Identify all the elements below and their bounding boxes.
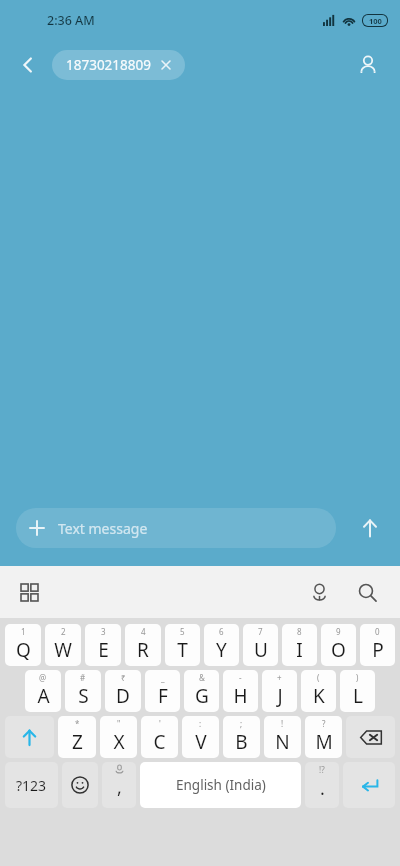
staticText: Q [16,637,31,663]
staticText: F [158,683,168,709]
staticText: @ [39,672,47,683]
button[interactable]: * [58,716,96,758]
staticText: ) [356,672,359,683]
staticText: H [233,683,248,709]
button[interactable]: ' [141,716,178,758]
staticText: U [254,637,268,663]
button[interactable]: 8 [282,624,317,666]
button[interactable]: - [223,670,258,712]
button[interactable]: 5 [165,624,200,666]
button[interactable]: Backspace [346,716,395,758]
staticText: 4 [141,626,146,637]
button[interactable]: ; [223,716,260,758]
button[interactable]: + [262,670,297,712]
staticText: J [277,683,283,709]
button[interactable]: ? [305,716,342,758]
staticText: Text message [58,519,148,538]
staticText: - [239,672,242,683]
staticText: M [315,729,333,755]
button[interactable]: 7 [243,624,278,666]
button[interactable]: # [65,670,101,712]
button[interactable]: " [100,716,137,758]
staticText: ; [240,718,243,729]
staticText: P [372,637,384,663]
staticText: 8 [297,626,302,637]
button[interactable]: : [182,716,219,758]
staticText: T [177,637,188,663]
staticText: R [137,637,149,663]
staticText: L [353,683,363,709]
button[interactable]: 2 [45,624,81,666]
staticText: S [78,683,89,709]
staticText: Z [72,729,83,755]
staticText: * [75,718,80,729]
button[interactable]: ₹ [105,670,141,712]
button[interactable]: 9 [321,624,356,666]
button[interactable]: 3 [85,624,121,666]
staticText: & [199,672,205,683]
staticText: ! [281,718,284,729]
button[interactable]: Emoji [62,762,98,808]
staticText: I [296,637,303,663]
button[interactable]: @ [25,670,61,712]
button[interactable]: Back [10,47,46,83]
button[interactable]: , [102,762,136,808]
staticText: O [331,637,346,663]
staticText: ' [159,718,161,729]
staticText: . [320,776,325,801]
staticText: ?123 [16,776,47,795]
staticText: 7 [258,626,263,637]
staticText: # [80,672,86,683]
staticText: V [195,729,207,755]
button[interactable]: Shift [5,716,54,758]
button[interactable]: 6 [204,624,239,666]
staticText: 1 [21,626,26,637]
staticText: 2 [61,626,66,637]
button[interactable]: & [184,670,219,712]
button[interactable]: English (India) [140,762,301,808]
staticText: 9 [336,626,341,637]
staticText: G [195,683,209,709]
button[interactable]: Search [348,573,386,611]
button[interactable]: 4 [125,624,161,666]
button[interactable]: Voice input [300,573,338,611]
button[interactable]: ?123 [5,762,58,808]
staticText: D [116,683,130,709]
staticText: English (India) [176,776,266,794]
staticText: C [153,729,166,755]
staticText: 0 [375,626,380,637]
staticText: ₹ [121,672,126,683]
staticText: 6 [219,626,224,637]
button[interactable]: _ [145,670,180,712]
staticText: " [117,718,121,729]
button[interactable]: 0 [360,624,395,666]
staticText: _ [161,672,165,683]
staticText: K [313,683,325,709]
button[interactable]: 1 [5,624,41,666]
staticText: Y [216,637,227,663]
staticText: ? [322,718,326,729]
staticText: 100 [369,16,382,26]
staticText: 3 [101,626,106,637]
button[interactable]: 18730218809 [52,50,185,80]
staticText: W [54,637,72,663]
staticText: A [37,683,50,709]
staticText: !? [319,764,325,775]
staticText: : [199,718,202,729]
button[interactable]: Clipboard [12,575,46,609]
button[interactable]: ( [301,670,336,712]
staticText: , [117,775,122,800]
button[interactable]: Text message [16,508,336,548]
button[interactable]: Send [348,506,392,550]
staticText: E [98,637,109,663]
button[interactable]: ! [264,716,301,758]
button[interactable]: Contact [348,45,388,85]
staticText: 5 [180,626,185,637]
staticText: 2:36 AM [47,12,95,29]
staticText: ( [317,672,320,683]
staticText: 18730218809 [66,56,151,74]
staticText: X [113,729,125,755]
button[interactable]: ) [340,670,375,712]
button[interactable]: !? [305,762,339,808]
button[interactable]: Enter [343,762,395,808]
